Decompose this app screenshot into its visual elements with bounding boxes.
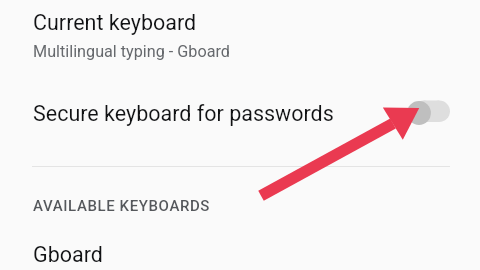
- button[interactable]: Secure keyboard for passwords toggle: [400, 90, 462, 136]
- button[interactable]: Secure keyboard for passwords: [0, 82, 480, 144]
- button[interactable]: Gboard: [0, 228, 480, 270]
- button[interactable]: Current keyboard: [0, 0, 480, 82]
- staticText: Current keyboard: [33, 10, 197, 35]
- staticText: AVAILABLE KEYBOARDS: [33, 197, 211, 215]
- staticText: Secure keyboard for passwords: [33, 101, 334, 126]
- staticText: Multilingual typing - Gboard: [33, 42, 230, 61]
- staticText: Gboard: [33, 242, 103, 267]
